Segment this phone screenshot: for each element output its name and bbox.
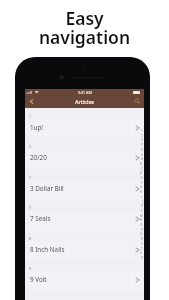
staticText: 7: [141, 143, 143, 147]
staticText: 3 Dollar Bill: [30, 184, 136, 193]
staticText: Q: [140, 232, 143, 236]
staticText: A: [141, 157, 143, 161]
staticText: 3: [141, 138, 143, 142]
staticText: P: [141, 228, 143, 232]
staticText: 3: [29, 175, 32, 180]
staticText: 2: [29, 144, 32, 149]
staticText: V: [141, 256, 143, 260]
staticText: O: [140, 223, 143, 227]
staticText: 1up!: [30, 123, 136, 132]
button[interactable]: 1up!: [25, 120, 144, 139]
staticText: 7: [29, 205, 32, 210]
staticText: 9: [141, 153, 143, 157]
staticText: J: [142, 200, 143, 204]
button[interactable]: Back: [25, 95, 37, 108]
staticText: T: [141, 247, 143, 251]
staticText: B: [140, 162, 143, 166]
staticText: F: [141, 181, 143, 185]
staticText: 9 Volt: [30, 275, 136, 284]
staticText: L: [141, 209, 143, 213]
staticText: 1: [29, 114, 32, 119]
staticText: 8 Inch Nails: [30, 245, 136, 254]
staticText: M: [140, 214, 143, 218]
staticText: H: [140, 190, 143, 194]
staticText: 8: [29, 236, 32, 241]
staticText: N: [140, 218, 143, 222]
staticText: 2: [141, 134, 143, 138]
button[interactable]: 7 Seals: [25, 211, 144, 230]
staticText: Articles: [75, 98, 95, 105]
staticText: I: [141, 195, 143, 199]
staticText: U: [140, 251, 143, 255]
staticText: D: [140, 171, 143, 175]
staticText: S: [141, 242, 143, 246]
staticText: K: [141, 204, 143, 208]
staticText: 20/20: [30, 153, 136, 162]
staticText: R: [141, 237, 143, 241]
staticText: G: [140, 185, 143, 189]
staticText: 9:41 AM: [78, 90, 92, 95]
button[interactable]: 20/20: [25, 150, 144, 169]
staticText: 7 Seals: [30, 214, 136, 223]
button[interactable]: 3 Dollar Bill: [25, 181, 144, 200]
button[interactable]: 9 Volt: [25, 272, 144, 291]
staticText: 8: [141, 148, 143, 152]
staticText: 1: [141, 129, 143, 133]
button[interactable]: Search: [131, 95, 144, 108]
staticText: C: [141, 167, 143, 171]
staticText: Easy navigation: [0, 6, 169, 49]
staticText: E: [141, 176, 143, 180]
staticText: 9: [29, 266, 32, 271]
button[interactable]: 8 Inch Nails: [25, 242, 144, 261]
